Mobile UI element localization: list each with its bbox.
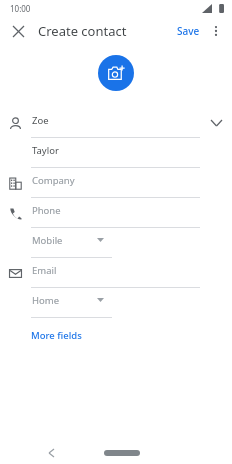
button[interactable]: Add photo xyxy=(98,55,134,91)
button[interactable]: Phone xyxy=(0,198,232,228)
button[interactable]: Expand name fields xyxy=(206,113,226,133)
button[interactable]: Email xyxy=(0,258,232,288)
staticText: Email xyxy=(32,264,57,277)
staticText: Home xyxy=(32,294,60,307)
button[interactable]: More fields xyxy=(28,326,85,345)
button[interactable]: Mobile xyxy=(0,228,232,258)
button[interactable]: Zoe xyxy=(0,108,232,138)
staticText: Create contact xyxy=(38,22,127,40)
staticText: More fields xyxy=(31,329,82,342)
staticText: Save xyxy=(177,24,200,38)
button[interactable]: Home xyxy=(104,450,140,456)
button[interactable]: Home xyxy=(0,288,232,318)
staticText: Phone xyxy=(32,204,61,217)
button[interactable]: Company xyxy=(0,168,232,198)
button[interactable]: Close xyxy=(5,18,31,44)
staticText: Zoe xyxy=(32,114,49,127)
button[interactable]: Back xyxy=(40,442,62,464)
staticText: Taylor xyxy=(32,144,59,157)
staticText: 10:00 xyxy=(10,3,31,14)
button[interactable]: More options xyxy=(204,19,228,43)
button[interactable]: Taylor xyxy=(0,138,232,168)
button[interactable]: Save xyxy=(173,20,204,42)
staticText: Mobile xyxy=(32,234,63,247)
staticText: Company xyxy=(32,174,75,187)
